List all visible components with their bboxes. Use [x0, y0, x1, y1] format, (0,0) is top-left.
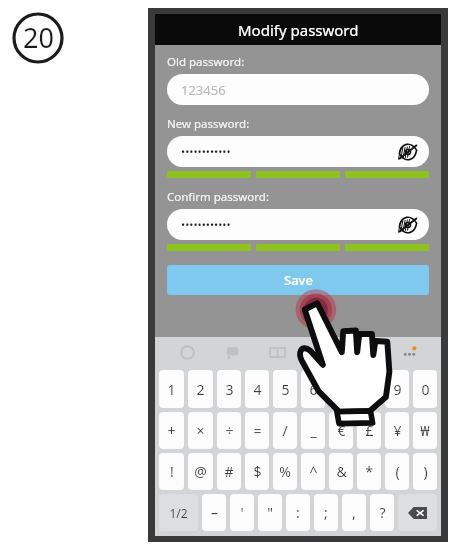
button[interactable]: 1: [159, 370, 184, 408]
button[interactable]: 6: [301, 370, 325, 408]
button[interactable]: Keyboard tool 0: [165, 337, 210, 368]
staticText: &: [336, 462, 347, 481]
button[interactable]: ÷: [217, 412, 241, 449]
button[interactable]: –: [202, 494, 226, 531]
button[interactable]: +: [159, 412, 184, 449]
button[interactable]: Keyboard tool 4: [343, 337, 387, 368]
staticText: New password:: [167, 116, 250, 132]
staticText: –: [211, 503, 218, 522]
staticText: ;: [324, 503, 328, 522]
staticText: 20: [23, 19, 54, 56]
button[interactable]: ": [258, 494, 282, 531]
button[interactable]: ×: [188, 412, 213, 449]
button[interactable]: 3: [217, 370, 241, 408]
staticText: Old password:: [167, 54, 245, 70]
staticText: ^: [309, 462, 318, 481]
button[interactable]: €: [329, 412, 353, 449]
staticText: €: [337, 421, 346, 440]
button[interactable]: ¥: [385, 412, 409, 449]
staticText: /: [282, 421, 288, 440]
button[interactable]: &: [329, 453, 353, 490]
button[interactable]: 8: [357, 370, 381, 408]
button[interactable]: :: [286, 494, 310, 531]
button[interactable]: %: [273, 453, 297, 490]
button[interactable]: !: [159, 453, 184, 490]
button[interactable]: ': [230, 494, 254, 531]
button[interactable]: 7: [329, 370, 353, 408]
staticText: £: [365, 421, 374, 440]
button[interactable]: ^: [301, 453, 325, 490]
button[interactable]: @: [188, 453, 213, 490]
button[interactable]: ••••••••••••: [167, 209, 429, 240]
staticText: *: [365, 462, 373, 481]
button[interactable]: Save: [167, 265, 429, 295]
staticText: :: [296, 503, 300, 522]
staticText: Modify password: [238, 20, 359, 40]
staticText: %: [279, 462, 291, 481]
button[interactable]: =: [245, 412, 269, 449]
button[interactable]: 4: [245, 370, 269, 408]
button[interactable]: Keyboard tool 2: [255, 337, 299, 368]
staticText: ••••••••••••: [181, 217, 231, 232]
button[interactable]: Keyboard tool 5: [387, 337, 431, 368]
button[interactable]: ••••••••••••: [167, 136, 429, 167]
staticText: 3: [225, 380, 234, 399]
staticText: ): [423, 462, 428, 481]
staticText: $: [253, 462, 262, 481]
button[interactable]: ): [413, 453, 437, 490]
staticText: ,: [352, 503, 356, 522]
button[interactable]: 9: [385, 370, 409, 408]
button[interactable]: Keyboard tool 1: [210, 337, 255, 368]
staticText: 0: [421, 380, 430, 399]
button[interactable]: Keyboard tool 3: [299, 337, 343, 368]
button[interactable]: ;: [314, 494, 338, 531]
staticText: ': [240, 503, 244, 522]
button[interactable]: 1/2: [159, 494, 198, 531]
staticText: ×: [196, 421, 205, 440]
button[interactable]: $: [245, 453, 269, 490]
button[interactable]: 5: [273, 370, 297, 408]
staticText: _: [310, 421, 317, 440]
staticText: ": [267, 503, 273, 522]
button[interactable]: Show password: [395, 212, 421, 238]
staticText: 2: [196, 380, 205, 399]
staticText: #: [224, 462, 234, 481]
button[interactable]: /: [273, 412, 297, 449]
button[interactable]: _: [301, 412, 325, 449]
staticText: ••••••••••••: [181, 144, 231, 159]
staticText: 1: [167, 380, 176, 399]
staticText: 6: [309, 380, 318, 399]
staticText: (: [395, 462, 400, 481]
button[interactable]: ,: [342, 494, 366, 531]
staticText: 5: [281, 380, 290, 399]
staticText: =: [253, 421, 262, 440]
staticText: ₩: [420, 421, 430, 440]
staticText: 123456: [181, 81, 226, 99]
button[interactable]: Show password: [395, 139, 421, 165]
button[interactable]: 123456: [167, 74, 429, 105]
button[interactable]: 0: [413, 370, 437, 408]
button[interactable]: ?: [370, 494, 394, 531]
staticText: !: [170, 462, 174, 481]
button[interactable]: 2: [188, 370, 213, 408]
staticText: ÷: [225, 421, 234, 440]
staticText: @: [194, 462, 207, 481]
staticText: ?: [379, 503, 386, 522]
staticText: 9: [393, 380, 402, 399]
button[interactable]: ₩: [413, 412, 437, 449]
button[interactable]: Backspace: [398, 494, 437, 531]
staticText: Confirm password:: [167, 189, 269, 205]
button[interactable]: (: [385, 453, 409, 490]
staticText: 4: [253, 380, 262, 399]
staticText: +: [167, 421, 176, 440]
button[interactable]: #: [217, 453, 241, 490]
staticText: 1/2: [169, 505, 188, 521]
button[interactable]: £: [357, 412, 381, 449]
staticText: Save: [284, 271, 313, 289]
staticText: ¥: [393, 421, 402, 440]
button[interactable]: *: [357, 453, 381, 490]
